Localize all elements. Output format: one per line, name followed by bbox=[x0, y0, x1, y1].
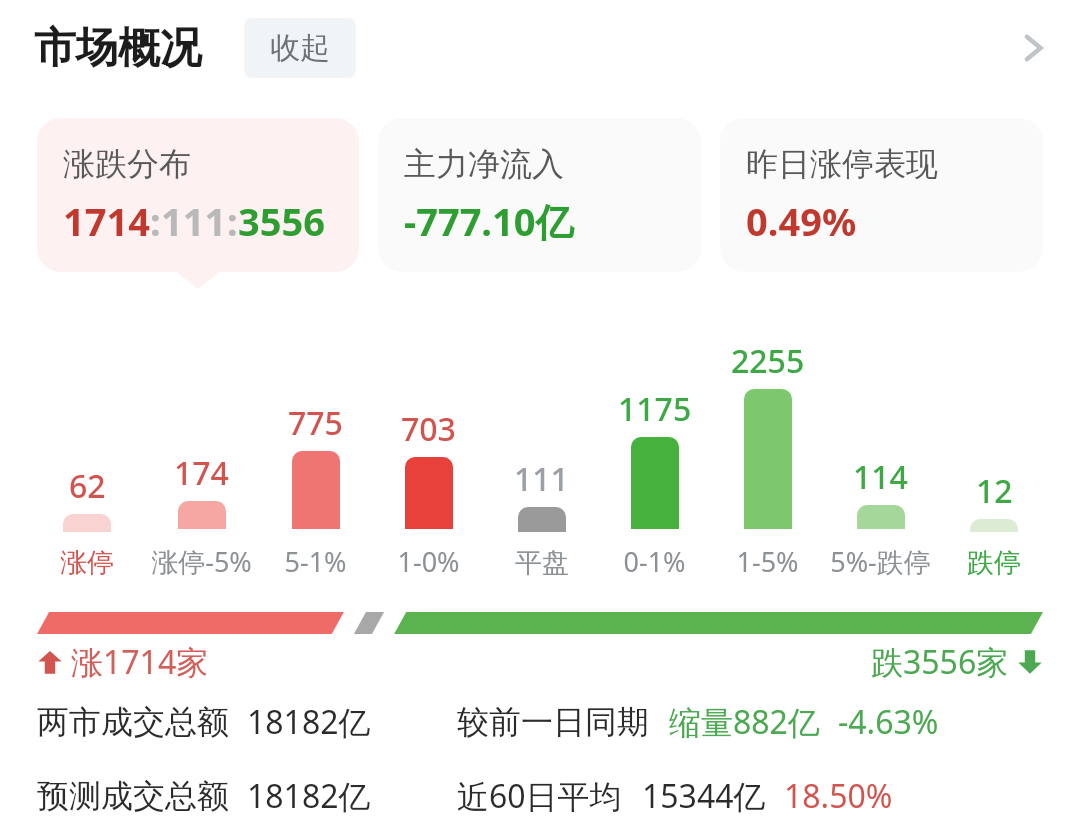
staticText: 跌3556家 bbox=[871, 640, 1009, 684]
staticText: 涨停 bbox=[60, 546, 114, 580]
staticText: 5%-跌停 bbox=[830, 543, 931, 580]
staticText: 缩量882亿 bbox=[669, 700, 820, 744]
staticText: : bbox=[150, 195, 161, 247]
staticText: 111 bbox=[161, 195, 227, 247]
staticText: 775 bbox=[288, 401, 343, 445]
staticText: 18.50% bbox=[784, 774, 893, 818]
button[interactable]: 涨跌分布 bbox=[37, 118, 359, 272]
staticText: 174 bbox=[174, 451, 229, 495]
staticText: 62 bbox=[69, 464, 106, 508]
staticText: 2255 bbox=[731, 339, 805, 383]
staticText: 0-1% bbox=[623, 543, 686, 580]
staticText: 1-5% bbox=[736, 543, 799, 580]
staticText: 5-1% bbox=[284, 543, 347, 580]
staticText: 114 bbox=[853, 455, 908, 499]
staticText: : bbox=[227, 195, 238, 247]
staticText: 市场概况 bbox=[34, 22, 202, 75]
button[interactable]: 收起 bbox=[244, 18, 356, 78]
staticText: 1-0% bbox=[397, 543, 460, 580]
staticText: 12 bbox=[976, 469, 1013, 513]
staticText: 跌停 bbox=[967, 546, 1021, 580]
staticText: 较前一日同期 bbox=[457, 702, 649, 742]
staticText: 3556 bbox=[238, 195, 325, 247]
staticText: 18182亿 bbox=[247, 700, 371, 744]
staticText: 15344亿 bbox=[642, 774, 766, 818]
button[interactable]: 昨日涨停表现 bbox=[720, 118, 1043, 272]
staticText: 近60日平均 bbox=[457, 774, 622, 818]
staticText: 涨停-5% bbox=[151, 543, 252, 580]
staticText: 0.49% bbox=[746, 195, 857, 247]
staticText: 18182亿 bbox=[247, 774, 371, 818]
staticText: 涨跌分布 bbox=[63, 144, 191, 184]
staticText: 昨日涨停表现 bbox=[746, 144, 938, 184]
staticText: 1175 bbox=[618, 387, 692, 431]
staticText: 涨1714家 bbox=[71, 640, 209, 684]
staticText: 703 bbox=[401, 407, 456, 451]
staticText: 预测成交总额 bbox=[37, 776, 229, 816]
staticText: 两市成交总额 bbox=[37, 702, 229, 742]
staticText: 主力净流入 bbox=[404, 144, 564, 184]
staticText: 收起 bbox=[270, 29, 330, 67]
staticText: -4.63% bbox=[838, 700, 939, 744]
staticText: 平盘 bbox=[515, 546, 569, 580]
button[interactable]: 主力净流入 bbox=[378, 118, 701, 272]
staticText: 1714 bbox=[63, 195, 150, 247]
staticText: -777.10亿 bbox=[404, 195, 574, 247]
staticText: 111 bbox=[514, 457, 569, 501]
button[interactable]: More bbox=[998, 13, 1068, 83]
